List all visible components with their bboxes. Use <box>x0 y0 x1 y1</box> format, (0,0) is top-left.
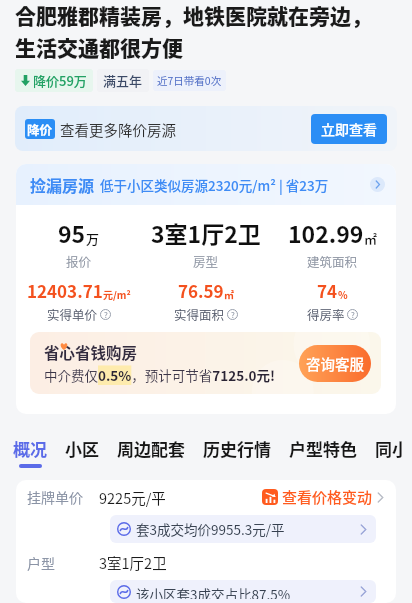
staticText: 概况 <box>13 436 47 461</box>
staticText: 低于小区类似房源2320元/m² | 省23万 <box>100 175 329 195</box>
staticText: 近7日带看0次 <box>157 73 222 88</box>
staticText: 同小 <box>375 436 403 461</box>
staticText: 建筑面积 <box>307 252 358 270</box>
staticText: 3室1厅2卫 <box>99 552 167 573</box>
staticText: 102.99 <box>288 216 364 249</box>
button[interactable]: 历史行情 <box>203 436 271 468</box>
staticText: 周边配套 <box>117 436 185 461</box>
staticText: 咨询客服 <box>306 353 364 374</box>
button[interactable]: 降价 <box>15 106 397 151</box>
staticText: 小区 <box>65 436 99 461</box>
staticText: 户型 <box>27 553 55 573</box>
staticText: 捡漏房源 <box>30 173 95 196</box>
staticText: 12403.71 <box>27 278 103 303</box>
staticText: 降价 <box>27 120 53 138</box>
staticText: 省心省钱购房 <box>44 341 138 363</box>
button[interactable]: 省心省钱购房 <box>30 332 381 394</box>
staticText: ? <box>351 309 355 320</box>
staticText: 9225元/平 <box>99 487 166 508</box>
staticText: 立即查看 <box>321 119 377 139</box>
staticText: 历史行情 <box>203 436 271 461</box>
staticText: 套3成交均价9955.3元/平 <box>136 519 285 539</box>
staticText: % <box>338 287 348 301</box>
staticText: 户型特色 <box>289 436 357 461</box>
button[interactable]: 立即查看 <box>321 119 377 139</box>
button[interactable]: 小区 <box>65 436 99 468</box>
button[interactable]: 该小区套3成交占比87.5% <box>117 584 368 599</box>
button[interactable]: 查看价格变动 <box>262 486 385 508</box>
staticText: ㎡ <box>364 229 378 248</box>
staticText: 满五年 <box>103 71 143 90</box>
staticText: 74 <box>317 278 338 303</box>
staticText: 76.59 <box>178 278 224 303</box>
staticText: 查看更多降价房源 <box>60 119 176 140</box>
staticText: 挂牌单价 <box>27 487 83 507</box>
staticText: ㎡ <box>224 287 234 301</box>
button[interactable]: 咨询客服 <box>306 353 364 374</box>
button[interactable]: 捡漏房源 <box>30 173 385 196</box>
button[interactable]: 同小 <box>375 436 403 468</box>
button[interactable]: 户型特色 <box>289 436 357 468</box>
staticText: 报价 <box>66 252 92 270</box>
staticText: 万 <box>86 229 100 248</box>
staticText: 实得单价 <box>47 305 98 323</box>
staticText: 查看价格变动 <box>282 486 373 508</box>
staticText: 95 <box>58 216 86 249</box>
button[interactable]: 概况 <box>13 436 47 468</box>
staticText: 降价59万 <box>33 71 87 90</box>
staticText: ? <box>104 309 108 320</box>
staticText: 得房率 <box>307 305 345 323</box>
button[interactable]: 套3成交均价9955.3元/平 <box>117 519 368 539</box>
staticText: 该小区套3成交占比87.5% <box>136 584 291 599</box>
staticText: 元/m² <box>103 287 131 301</box>
staticText: 实得面积 <box>174 305 225 323</box>
button[interactable]: 周边配套 <box>117 436 185 468</box>
staticText: 3室1厅2卫 <box>151 216 261 249</box>
staticText: ? <box>231 309 235 320</box>
staticText: 中介费仅0.5%，预计可节省7125.0元! <box>44 365 276 385</box>
staticText: 合肥雅郡精装房，地铁医院就在旁边， 生活交通都很方便 <box>15 0 372 62</box>
staticText: 房型 <box>193 252 219 270</box>
